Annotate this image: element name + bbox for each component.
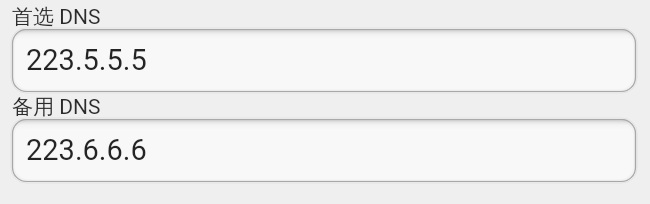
staticText: 223.6.6.6 [26,133,147,167]
button[interactable]: 首选 DNS [12,29,636,92]
button[interactable]: 备用 DNS [12,119,636,182]
staticText: 首选 DNS [12,4,101,30]
staticText: 备用 DNS [12,94,101,120]
staticText: 223.5.5.5 [26,43,147,77]
